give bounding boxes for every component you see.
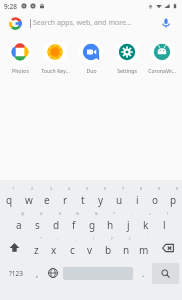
button[interactable]: 6 [92,185,110,210]
staticText: y [98,193,104,207]
staticText: . [142,268,145,279]
staticText: ; [75,236,77,241]
button[interactable]: 2 [19,185,38,210]
button[interactable]: Search [152,263,179,284]
staticText: " [40,236,42,241]
staticText: 5 [86,186,89,191]
staticText: n [123,243,130,257]
staticText: % [76,211,80,216]
staticText: # [40,211,43,216]
staticText: c [70,243,75,257]
staticText: e [44,193,50,207]
staticText: Touch Key... [41,67,70,74]
button[interactable]: ?123 [2,261,29,285]
staticText: r [63,193,68,207]
button[interactable]: Backspace [153,235,182,260]
button[interactable]: Change keyboard [45,261,61,285]
staticText: : [57,236,59,241]
staticText: w [25,193,33,207]
button[interactable]: * [101,210,119,235]
staticText: 1 [12,186,15,191]
button[interactable]: 1 [0,185,19,210]
button[interactable]: @ [9,210,28,235]
staticText: q [6,193,13,207]
button[interactable]: . [135,261,151,285]
staticText: b [105,243,112,257]
button[interactable]: Settings [110,39,144,75]
button[interactable]: / [117,235,135,260]
staticText: o [152,193,159,207]
button[interactable]: Touch Key... [38,39,72,75]
button[interactable]: $ [47,210,65,235]
button[interactable]: 9 [146,185,164,210]
button[interactable]: + [137,210,155,235]
staticText: , [36,268,39,279]
button[interactable]: ' [135,235,153,260]
staticText: s [35,218,40,232]
staticText: $ [59,211,62,216]
staticText: z [34,243,39,257]
staticText: @ [21,211,25,216]
staticText: l [163,218,166,232]
staticText: 2 [31,186,34,191]
button[interactable]: ? [99,235,117,260]
staticText: f [72,218,76,232]
button[interactable]: 8 [128,185,146,210]
staticText: k [143,218,149,232]
staticText: ? [111,236,113,241]
staticText: Search apps, web, and more... [33,18,132,28]
button[interactable]: : [45,235,63,260]
staticText: Settings [117,67,137,74]
staticText: ( [167,211,169,216]
staticText: Duo [86,67,97,74]
staticText: 3 [50,186,53,191]
button[interactable]: # [28,210,47,235]
staticText: 7 [122,186,125,191]
staticText: x [51,243,57,257]
staticText: CoronaVir... [148,67,176,74]
staticText: * [113,211,116,216]
staticText: 9 [158,186,161,191]
staticText: m [139,243,149,257]
button[interactable]: 7 [110,185,128,210]
staticText: & [95,211,98,216]
staticText: ?123 [9,269,23,278]
button[interactable]: CoronaVir... [145,39,179,75]
staticText: h [107,218,114,232]
staticText: 4 [68,186,71,191]
staticText: 0 [176,186,179,191]
button[interactable]: Duo [74,39,108,75]
button[interactable]: " [28,235,45,260]
button[interactable]: % [65,210,83,235]
staticText: + [149,211,152,216]
staticText: d [53,218,60,232]
button[interactable]: ; [63,235,81,260]
button[interactable]: ( [155,210,173,235]
button[interactable]: 0 [164,185,182,210]
button[interactable]: 3 [38,185,56,210]
staticText: - [131,211,133,216]
button[interactable]: Shift [0,235,28,260]
staticText: j [127,218,130,232]
staticText: t [81,193,85,207]
staticText: g [89,218,96,232]
button[interactable]: - [119,210,137,235]
staticText: Photos [12,67,29,74]
button[interactable]: ! [81,235,99,260]
staticText: ' [148,236,149,241]
button[interactable]: Voice search [159,16,173,30]
staticText: v [87,243,93,257]
button[interactable]: & [83,210,101,235]
button[interactable]: , [29,261,45,285]
staticText: 6 [104,186,107,191]
button[interactable]: Search apps, web, and more... [0,12,182,34]
staticText: / [129,236,131,241]
staticText: p [170,193,177,207]
button[interactable]: 4 [56,185,74,210]
staticText: u [116,193,123,207]
button[interactable]: 5 [74,185,92,210]
button[interactable]: Photos [3,39,37,75]
staticText: 8 [140,186,143,191]
staticText: i [136,193,139,207]
